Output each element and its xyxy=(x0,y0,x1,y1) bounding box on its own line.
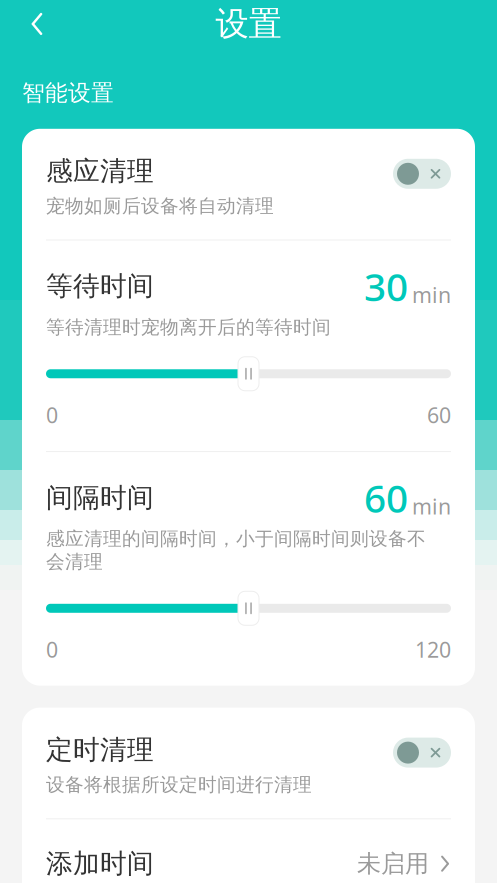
staticText: 设备将根据所设定时间进行清理 xyxy=(46,773,312,796)
staticText: min xyxy=(412,280,451,309)
button[interactable]: 调节滑块 xyxy=(238,357,259,391)
staticText: 感应清理 xyxy=(46,155,154,188)
staticText: 30 xyxy=(364,260,408,312)
staticText: min xyxy=(412,492,451,520)
staticText: 60 xyxy=(364,472,408,523)
staticText: 智能设置 xyxy=(22,79,114,107)
staticText: 未启用 xyxy=(357,849,429,878)
staticText: 感应清理的间隔时间，小于间隔时间则设备不会清理 xyxy=(46,527,426,573)
button[interactable]: 返回 xyxy=(14,1,60,47)
staticText: 0 xyxy=(46,635,58,664)
staticText: 60 xyxy=(427,401,451,429)
button[interactable]: 开关 xyxy=(393,159,451,189)
button[interactable]: 感应清理 xyxy=(22,129,475,239)
staticText: 等待清理时宠物离开后的等待时间 xyxy=(46,316,331,339)
button[interactable]: 添加时间 xyxy=(22,819,475,883)
staticText: 添加时间 xyxy=(46,847,154,880)
staticText: 宠物如厕后设备将自动清理 xyxy=(46,194,274,217)
staticText: 设置 xyxy=(215,3,281,44)
button[interactable]: 调节滑块 xyxy=(238,591,259,625)
staticText: 120 xyxy=(415,635,451,664)
button[interactable]: 开关 xyxy=(393,738,451,768)
staticText: 0 xyxy=(46,401,58,429)
staticText: 定时清理 xyxy=(46,734,154,766)
staticText: 等待时间 xyxy=(46,270,154,303)
staticText: 间隔时间 xyxy=(46,481,154,514)
button[interactable]: 定时清理 xyxy=(22,708,475,818)
